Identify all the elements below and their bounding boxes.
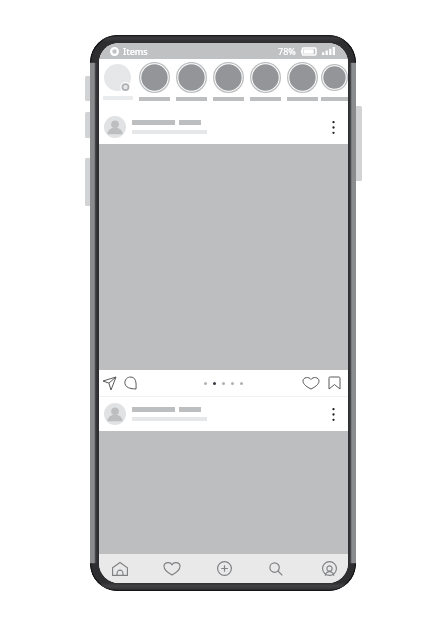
button[interactable]: Save bbox=[327, 373, 342, 393]
button[interactable]: More options bbox=[324, 112, 342, 142]
button[interactable]: Like bbox=[302, 373, 320, 393]
button[interactable]: More options bbox=[99, 110, 348, 144]
button[interactable] bbox=[99, 59, 136, 100]
button[interactable]: Create bbox=[200, 554, 248, 583]
button[interactable]: Profile bbox=[305, 554, 348, 583]
button[interactable]: More options bbox=[324, 399, 342, 429]
button[interactable] bbox=[173, 59, 210, 101]
button[interactable]: More options bbox=[99, 397, 348, 431]
button[interactable] bbox=[247, 59, 284, 101]
staticText: 78% bbox=[278, 45, 296, 57]
button[interactable] bbox=[210, 59, 247, 101]
staticText: Items bbox=[123, 45, 148, 57]
button[interactable] bbox=[136, 59, 173, 101]
button[interactable]: Home bbox=[99, 554, 144, 583]
button[interactable]: Share bbox=[101, 373, 118, 393]
button[interactable]: Activity bbox=[148, 554, 196, 583]
button[interactable] bbox=[321, 59, 348, 101]
button[interactable]: Search bbox=[252, 554, 300, 583]
button[interactable] bbox=[284, 59, 321, 101]
button[interactable]: Comment bbox=[122, 373, 139, 393]
